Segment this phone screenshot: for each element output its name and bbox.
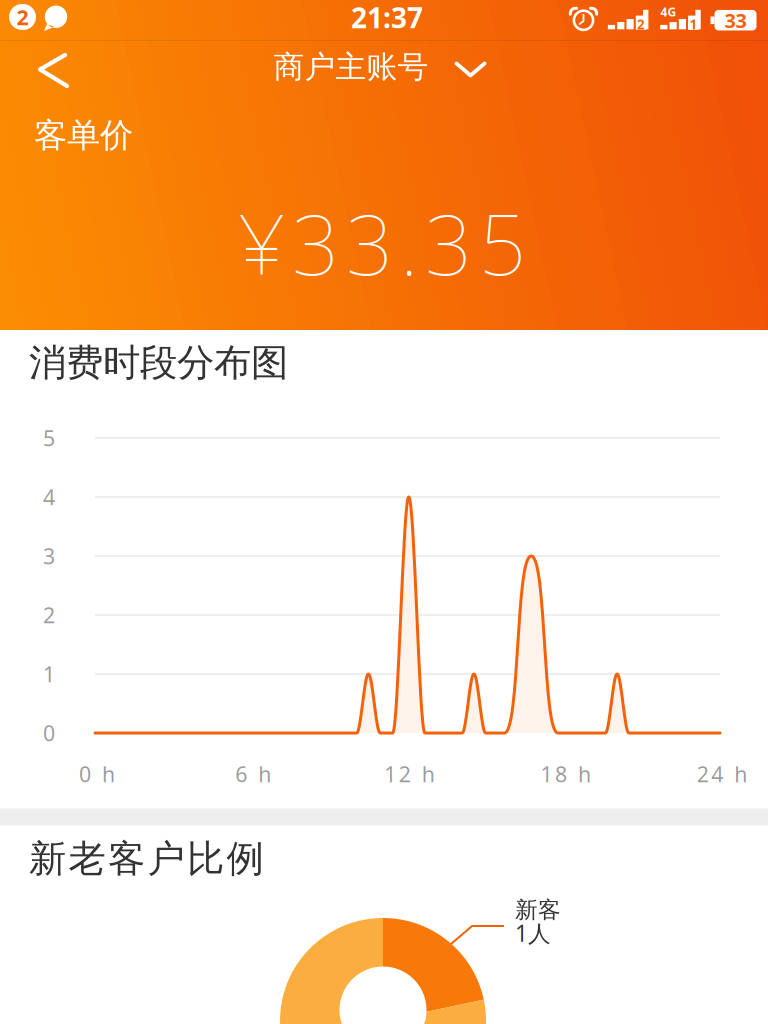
staticText: 2	[637, 15, 645, 33]
button[interactable]: Back	[0, 0, 768, 1024]
staticText: 2	[16, 3, 28, 31]
staticText: 12 h	[384, 760, 435, 788]
staticText: 0 h	[79, 760, 115, 788]
staticText: 33	[724, 7, 746, 33]
staticText: 6 h	[235, 760, 271, 788]
staticText: 消费时段分布图	[29, 340, 288, 386]
staticText: ¥33.35	[238, 188, 526, 298]
button[interactable]: 商户主账号	[273, 48, 486, 86]
staticText: 1	[689, 15, 697, 33]
staticText: 5	[43, 424, 55, 452]
button[interactable]: Notifications	[0, 0, 768, 1024]
staticText: 客单价	[34, 115, 133, 156]
staticText: 4G	[660, 4, 676, 20]
staticText: 1人	[515, 918, 551, 948]
staticText: 4	[43, 483, 55, 511]
staticText: 商户主账号	[273, 48, 428, 86]
staticText: 18 h	[540, 760, 591, 788]
staticText: 新老客户比例	[29, 836, 263, 882]
staticText: 新客	[515, 896, 561, 924]
staticText: 1	[43, 660, 55, 688]
staticText: 0	[43, 719, 55, 747]
staticText: 2	[43, 601, 55, 629]
staticText: 3	[43, 542, 55, 570]
staticText: 24 h	[697, 760, 747, 788]
staticText: 21:37	[351, 0, 423, 36]
